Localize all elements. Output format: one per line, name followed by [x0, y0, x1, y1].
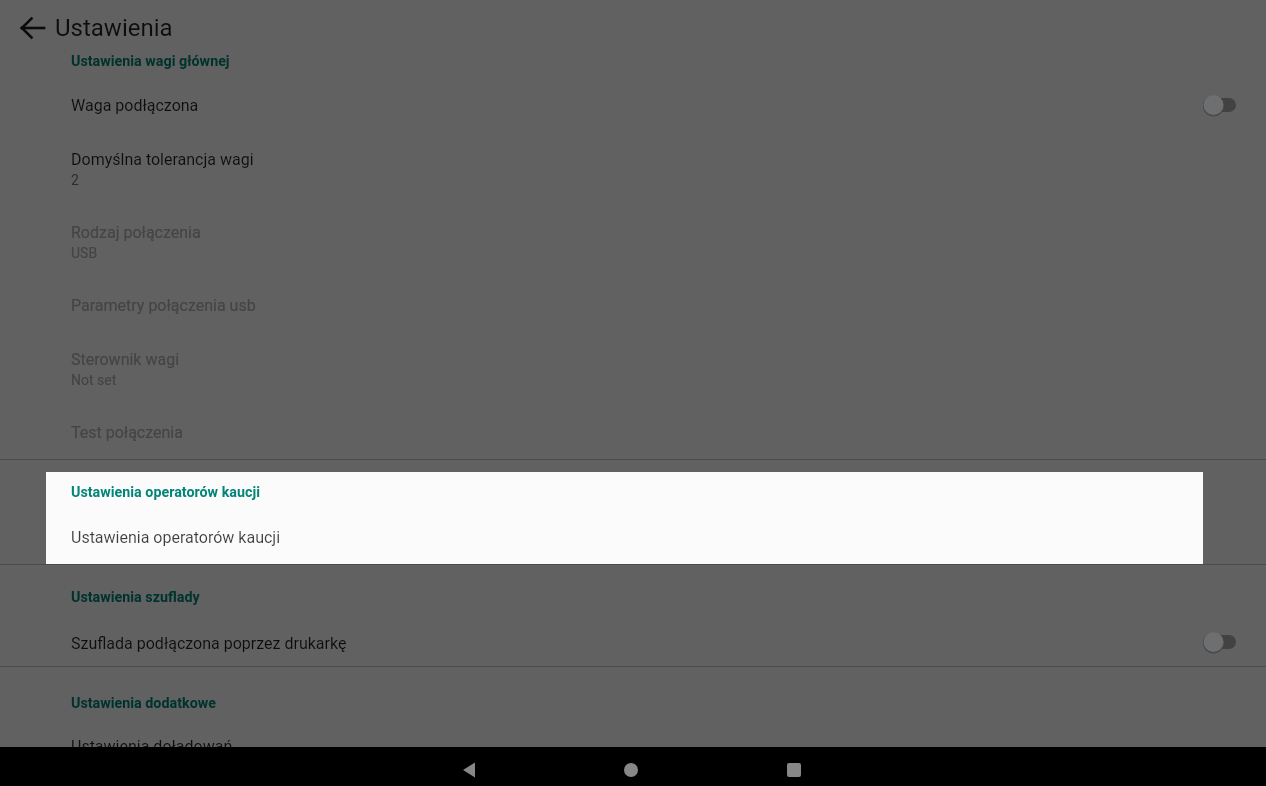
button[interactable] [770, 747, 818, 786]
staticText: Not set [71, 372, 117, 388]
staticText: Test połączenia [71, 423, 183, 442]
staticText: Ustawienia operatorów kaucji [71, 484, 260, 501]
staticText: Sterownik wagi [71, 350, 180, 369]
staticText: Parametry połączenia usb [71, 296, 256, 315]
button[interactable] [0, 79, 1266, 132]
staticText: USB [71, 245, 98, 261]
staticText: Ustawienia dodatkowe [71, 695, 216, 712]
staticText: Ustawienia doładowań [71, 737, 233, 756]
staticText: Domyślna tolerancja wagi [71, 150, 254, 169]
button[interactable] [0, 722, 1266, 747]
staticText: Szuflada podłączona poprzez drukarkę [71, 634, 347, 653]
staticText: Ustawienia [55, 14, 173, 42]
staticText: 2 [71, 172, 79, 188]
button[interactable] [0, 616, 1266, 667]
button[interactable] [46, 472, 1203, 564]
staticText: Rodzaj połączenia [71, 223, 201, 242]
staticText: Waga podłączona [71, 96, 199, 115]
staticText: Ustawienia wagi głównej [71, 53, 230, 70]
button[interactable] [0, 132, 1266, 204]
staticText: Ustawienia operatorów kaucji [71, 528, 281, 547]
button[interactable] [445, 747, 493, 786]
button[interactable] [607, 747, 655, 786]
staticText: Ustawienia szuflady [71, 589, 200, 606]
button[interactable] [11, 6, 55, 50]
